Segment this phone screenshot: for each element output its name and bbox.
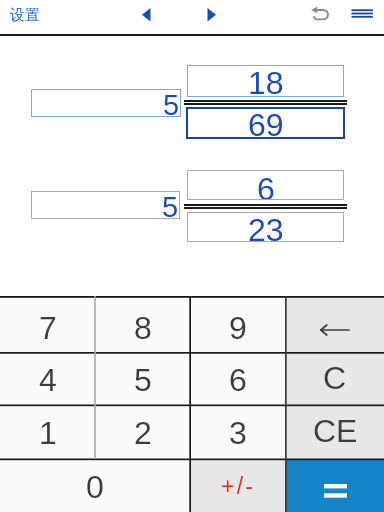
button[interactable]: 6 [190, 352, 286, 405]
staticText: 7 [39, 310, 57, 346]
staticText: 18 [248, 65, 284, 97]
button[interactable]: 设置 [10, 6, 40, 25]
staticText: 5 [163, 89, 180, 117]
button[interactable]: +/- [190, 459, 286, 512]
staticText: 69 [248, 107, 284, 139]
button[interactable] [348, 5, 376, 25]
button[interactable]: 3 [190, 405, 286, 459]
button[interactable]: 7 [0, 296, 95, 352]
staticText: 8 [134, 310, 152, 346]
staticText: 4 [39, 362, 57, 398]
staticText: 2 [134, 415, 152, 451]
staticText: 6 [257, 171, 275, 201]
staticText: 23 [248, 212, 284, 242]
staticText: 1 [39, 415, 57, 451]
button[interactable]: C [286, 352, 384, 405]
button[interactable] [286, 459, 384, 512]
staticText: 设置 [10, 6, 40, 25]
button[interactable]: 2 [95, 405, 190, 459]
button[interactable]: 4 [0, 352, 95, 405]
button[interactable]: 69 [186, 107, 345, 139]
button[interactable]: 18 [187, 65, 344, 97]
button[interactable] [204, 5, 220, 25]
staticText: 6 [229, 362, 247, 398]
button[interactable]: 9 [190, 296, 286, 352]
button[interactable]: CE [286, 405, 384, 459]
staticText: 5 [162, 191, 179, 219]
button[interactable]: 8 [95, 296, 190, 352]
staticText: 9 [229, 310, 247, 346]
staticText: CE [313, 413, 358, 449]
staticText: 3 [229, 415, 247, 451]
button[interactable]: 1 [0, 405, 95, 459]
button[interactable] [286, 296, 384, 352]
staticText: C [323, 360, 347, 396]
button[interactable]: 5 [31, 191, 180, 219]
button[interactable] [310, 5, 332, 25]
button[interactable]: 23 [187, 212, 344, 242]
button[interactable]: 5 [95, 352, 190, 405]
button[interactable]: 6 [187, 170, 344, 200]
staticText: 0 [86, 469, 104, 505]
button[interactable] [138, 5, 154, 25]
staticText: +/- [221, 473, 256, 499]
button[interactable]: 0 [0, 459, 190, 512]
button[interactable]: 5 [31, 89, 181, 117]
staticText: 5 [134, 362, 152, 398]
